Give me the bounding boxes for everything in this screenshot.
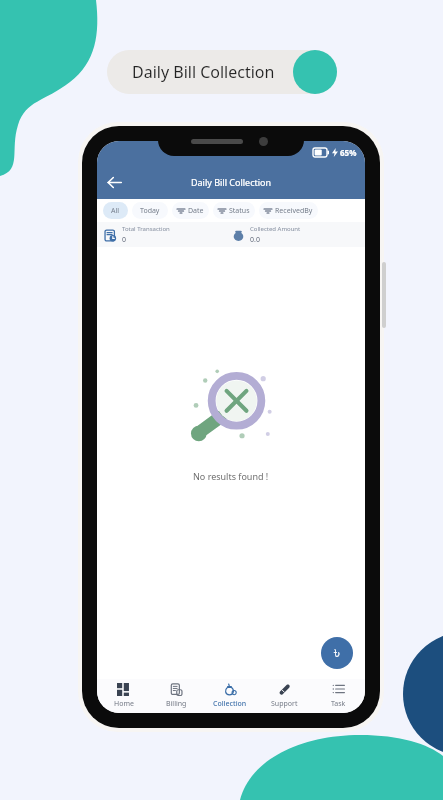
button[interactable]: Support	[257, 679, 311, 713]
staticText: No results found !	[193, 470, 269, 482]
staticText: Home	[114, 699, 134, 709]
button[interactable]: Home	[97, 679, 150, 713]
staticText: ৳	[334, 646, 340, 661]
staticText: Collection	[213, 699, 247, 709]
button[interactable]: Billing	[150, 679, 203, 713]
button[interactable]	[107, 50, 337, 94]
staticText: All	[111, 206, 120, 216]
staticText: Date	[188, 206, 204, 216]
button[interactable]: Total Transaction	[103, 225, 231, 245]
button[interactable]: All	[103, 202, 128, 219]
button[interactable]: ReceivedBy	[259, 202, 318, 219]
button[interactable]: Collection	[203, 679, 257, 713]
staticText: Status	[229, 206, 250, 216]
button[interactable]: Today	[132, 202, 168, 219]
staticText: Daily Bill Collection	[114, 176, 348, 188]
staticText: ReceivedBy	[275, 206, 313, 216]
button[interactable]: Date	[172, 202, 209, 219]
button[interactable]: Collected Amount	[231, 225, 359, 245]
staticText: Task	[331, 699, 346, 709]
staticText: 65%	[340, 147, 357, 158]
staticText: Daily Bill Collection	[132, 61, 275, 83]
staticText: 0	[122, 235, 127, 245]
staticText: Collected Amount	[250, 225, 301, 233]
button[interactable]: Add payment	[321, 637, 353, 669]
staticText: Support	[271, 699, 298, 709]
button[interactable]: Back	[97, 165, 131, 199]
staticText: 0.0	[250, 235, 260, 245]
button[interactable]: Task	[311, 679, 365, 713]
staticText: Billing	[166, 699, 187, 709]
staticText: Total Transaction	[122, 225, 170, 233]
button[interactable]: Status	[213, 202, 255, 219]
staticText: Today	[140, 206, 160, 216]
